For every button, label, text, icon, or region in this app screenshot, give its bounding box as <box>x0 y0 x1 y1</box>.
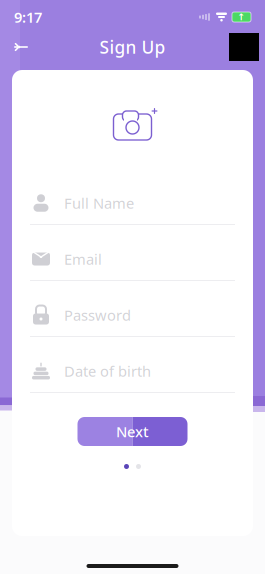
staticText: Next <box>116 422 149 441</box>
staticText: Sign Up <box>99 35 165 58</box>
button[interactable]: Date of birth <box>12 350 253 392</box>
button[interactable]: Next <box>77 417 187 446</box>
staticText: Password <box>64 305 131 325</box>
button[interactable]: Full Name <box>12 182 253 224</box>
button[interactable]: Email <box>12 238 253 280</box>
staticText: 9:17 <box>14 7 42 27</box>
staticText: ↑ <box>237 12 245 22</box>
staticText: Full Name <box>64 193 134 213</box>
button[interactable]: Password <box>12 294 253 336</box>
button[interactable]: Back <box>6 33 36 61</box>
staticText: Email <box>64 249 102 269</box>
staticText: Date of birth <box>64 361 151 381</box>
